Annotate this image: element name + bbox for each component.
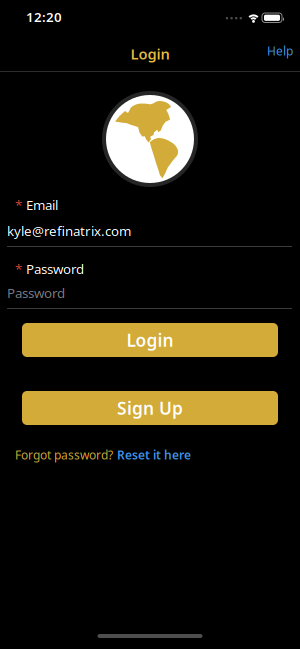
staticText: kyle@refinatrix.com [7, 222, 131, 240]
staticText: Forgot password? [15, 447, 113, 463]
staticText: Help [267, 43, 293, 59]
staticText: 12:20 [26, 8, 62, 26]
staticText: Password [7, 284, 65, 302]
button[interactable]: Sign Up [22, 391, 278, 425]
staticText: Reset it here [117, 447, 191, 463]
button[interactable]: Password [0, 284, 300, 309]
button[interactable]: Login [22, 323, 278, 357]
button[interactable]: Reset it here [117, 447, 191, 463]
button[interactable]: Help [257, 0, 300, 65]
button[interactable]: Email [0, 222, 300, 247]
staticText: Email [26, 196, 58, 214]
staticText: Login [126, 328, 173, 351]
staticText: Password [26, 260, 84, 278]
staticText: * [15, 196, 22, 214]
staticText: Sign Up [117, 396, 183, 419]
staticText: * [15, 260, 22, 278]
staticText: Login [130, 44, 169, 63]
